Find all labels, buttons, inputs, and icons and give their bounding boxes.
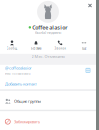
staticText: Coffee alasior <box>32 24 67 31</box>
button[interactable]: Без звука <box>24 39 48 50</box>
button[interactable]: Close <box>84 0 96 11</box>
staticText: Звонок <box>54 47 65 50</box>
staticText: Имя пользователя <box>5 72 31 75</box>
staticText: @coffeealasior <box>5 65 32 71</box>
staticText: 2 Мес. Отключено <box>31 54 64 59</box>
button[interactable]: Добавить контакт <box>0 81 96 89</box>
staticText: Общие группы <box>14 99 41 104</box>
staticText: Без звука <box>31 47 41 50</box>
button[interactable]: Сообщ. <box>0 39 24 50</box>
button[interactable]: Звонок <box>48 39 72 50</box>
button[interactable]: Заблокировать <box>0 111 96 130</box>
staticText: Заблокировать <box>14 119 40 124</box>
staticText: Сообщ. <box>6 47 17 50</box>
button[interactable]: @coffeealasior <box>0 65 96 81</box>
button[interactable]: Ещё <box>72 39 96 50</box>
staticText: был(а) недавно <box>35 30 61 35</box>
staticText: Добавить контакт <box>5 81 37 87</box>
button[interactable]: Общие группы <box>0 91 96 110</box>
staticText: Ещё <box>82 47 86 50</box>
